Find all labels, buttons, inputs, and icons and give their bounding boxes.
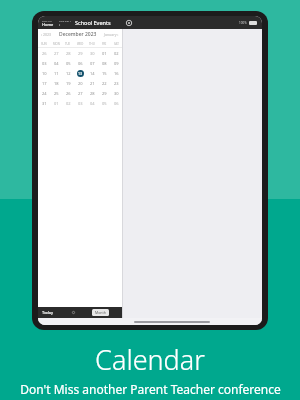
staticText: SUN [41, 42, 47, 46]
staticText: WED [77, 42, 84, 46]
staticText: TUE [65, 42, 71, 46]
button[interactable]: 16 [110, 68, 122, 78]
button[interactable]: 07 [86, 58, 98, 68]
button[interactable]: 17 [38, 78, 50, 88]
button[interactable]: 04 [50, 58, 62, 68]
staticText: 11 [54, 71, 59, 76]
staticText: Home [42, 22, 54, 27]
staticText: 06 [114, 101, 119, 106]
button[interactable]: Settings [123, 17, 134, 28]
button[interactable]: Search [71, 310, 76, 315]
button[interactable]: 29 [98, 88, 110, 98]
button[interactable]: January › [103, 31, 120, 38]
button[interactable]: 11 [50, 68, 62, 78]
button[interactable]: 23 [110, 78, 122, 88]
staticText: 9:30 AM [42, 19, 52, 22]
staticText: SAT [114, 42, 119, 46]
button[interactable]: 06 [110, 98, 122, 108]
staticText: 30 [114, 91, 119, 96]
staticText: 03 [78, 101, 83, 106]
staticText: 01 [54, 101, 59, 106]
staticText: 04 [90, 101, 95, 106]
button[interactable]: 26 [62, 88, 74, 98]
staticText: 13 [78, 71, 83, 76]
staticText: 21 [90, 81, 95, 86]
staticText: 08 [102, 61, 107, 66]
button[interactable]: 10 [38, 68, 50, 78]
button[interactable]: 25 [50, 88, 62, 98]
staticText: 14 [90, 71, 95, 76]
button[interactable]: 01 [50, 98, 62, 108]
staticText: ‹ [59, 22, 61, 27]
button[interactable]: Month [92, 309, 109, 316]
button[interactable]: Wed Dec 1 [58, 19, 73, 27]
staticText: 17 [42, 81, 47, 86]
button[interactable]: ‹ 2023 [40, 31, 53, 38]
button[interactable]: 12 [62, 68, 74, 78]
button[interactable]: 02 [62, 98, 74, 108]
button[interactable]: 28 [62, 48, 74, 58]
staticText: 22 [102, 81, 107, 86]
button[interactable]: 19 [62, 78, 74, 88]
button[interactable]: 29 [74, 48, 86, 58]
button[interactable]: 24 [38, 88, 50, 98]
button[interactable]: 9:30 AM [41, 19, 55, 27]
staticText: 27 [54, 51, 59, 56]
staticText: 09 [114, 61, 119, 66]
staticText: 23 [114, 81, 119, 86]
staticText: 100% [239, 21, 247, 25]
staticText: 07 [90, 61, 95, 66]
button[interactable]: 04 [86, 98, 98, 108]
button[interactable]: 13 [74, 68, 86, 78]
button[interactable]: 30 [86, 48, 98, 58]
button[interactable]: 01 [98, 48, 110, 58]
staticText: 01 [102, 51, 107, 56]
staticText: MON [53, 42, 60, 46]
button[interactable]: 02 [110, 48, 122, 58]
staticText: 05 [66, 61, 71, 66]
button[interactable]: 14 [86, 68, 98, 78]
staticText: 06 [78, 61, 83, 66]
button[interactable]: 18 [50, 78, 62, 88]
button[interactable]: 05 [98, 98, 110, 108]
button[interactable]: 31 [38, 98, 50, 108]
staticText: FRI [102, 42, 107, 46]
staticText: 25 [54, 91, 59, 96]
staticText: 19 [66, 81, 71, 86]
button[interactable]: 28 [86, 88, 98, 98]
button[interactable]: 27 [50, 48, 62, 58]
staticText: 31 [42, 101, 47, 106]
staticText: December 2023 [59, 31, 97, 38]
button[interactable]: 20 [74, 78, 86, 88]
button[interactable]: 22 [98, 78, 110, 88]
staticText: Don't Miss another Parent Teacher confer… [20, 381, 281, 397]
button[interactable]: 09 [110, 58, 122, 68]
button[interactable]: 08 [98, 58, 110, 68]
button[interactable]: 03 [38, 58, 50, 68]
button[interactable]: 26 [38, 48, 50, 58]
staticText: 29 [78, 51, 83, 56]
button[interactable]: 27 [74, 88, 86, 98]
staticText: Month [95, 310, 106, 315]
staticText: 02 [114, 51, 119, 56]
button[interactable]: 21 [86, 78, 98, 88]
staticText: Wed Dec 1 [59, 19, 72, 22]
staticText: 26 [66, 91, 71, 96]
staticText: 26 [42, 51, 47, 56]
staticText: 03 [42, 61, 47, 66]
staticText: 24 [42, 91, 47, 96]
button[interactable]: 03 [74, 98, 86, 108]
staticText: School Events [75, 19, 111, 26]
staticText: 28 [66, 51, 71, 56]
staticText: 18 [54, 81, 59, 86]
button[interactable]: 30 [110, 88, 122, 98]
staticText: 04 [54, 61, 59, 66]
button[interactable]: Today [41, 309, 55, 316]
button[interactable]: 05 [62, 58, 74, 68]
staticText: 02 [66, 101, 71, 106]
button[interactable]: 06 [74, 58, 86, 68]
staticText: 30 [90, 51, 95, 56]
staticText: 10 [42, 71, 47, 76]
staticText: THU [89, 42, 95, 46]
button[interactable]: 15 [98, 68, 110, 78]
